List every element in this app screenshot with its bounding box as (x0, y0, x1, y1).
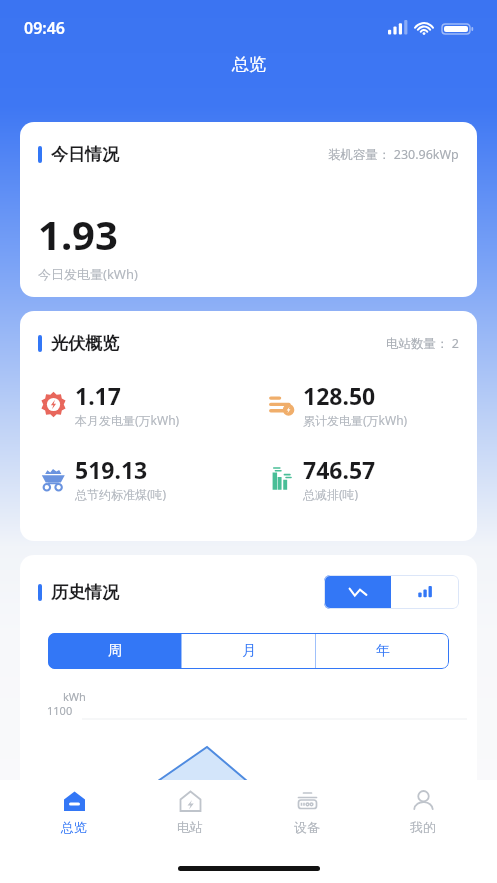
staticText: 电站数量： 2 (386, 335, 459, 352)
staticText: 总节约标准煤(吨) (75, 486, 167, 502)
other: Overview (62, 789, 87, 814)
staticText: 今日发电量(kWh) (38, 265, 138, 283)
staticText: 519.13 (75, 454, 148, 485)
staticText: 1.93 (38, 207, 118, 261)
button[interactable]: Bar chart (391, 575, 459, 609)
staticText: 总览 (61, 819, 87, 835)
other: Power plant (178, 789, 203, 814)
staticText: 月 (242, 642, 256, 660)
staticText: 本月发电量(万kWh) (75, 412, 180, 428)
staticText: 历史情况 (51, 582, 119, 603)
staticText: 电站 (177, 819, 203, 835)
staticText: 1.17 (75, 380, 121, 411)
button[interactable]: Power plant (147, 780, 233, 850)
staticText: 光伏概览 (51, 333, 119, 354)
button[interactable]: Line chart (324, 575, 391, 609)
button[interactable]: 年 (316, 633, 449, 669)
staticText: 总减排(吨) (303, 486, 359, 502)
staticText: 周 (108, 642, 122, 660)
other: Bar chart (417, 585, 433, 599)
other: Line chart (348, 586, 368, 598)
button[interactable]: 周 (48, 633, 181, 669)
button[interactable]: 月 (182, 633, 315, 669)
button[interactable]: Devices (264, 780, 350, 850)
staticText: 设备 (294, 819, 320, 835)
staticText: 746.57 (303, 454, 376, 485)
staticText: 总览 (232, 54, 266, 75)
other: Devices (295, 789, 320, 814)
staticText: kWh (63, 689, 86, 704)
staticText: 09:46 (24, 17, 66, 39)
staticText: 年 (376, 642, 390, 660)
staticText: 我的 (410, 819, 436, 835)
button[interactable]: Overview (31, 780, 117, 850)
staticText: 128.50 (303, 380, 376, 411)
staticText: 1100 (47, 703, 73, 718)
staticText: 今日情况 (51, 144, 119, 165)
other: Profile (411, 789, 436, 814)
button[interactable]: Profile (380, 780, 466, 850)
staticText: 累计发电量(万kWh) (303, 412, 408, 428)
staticText: 装机容量： 230.96kWp (328, 146, 459, 163)
